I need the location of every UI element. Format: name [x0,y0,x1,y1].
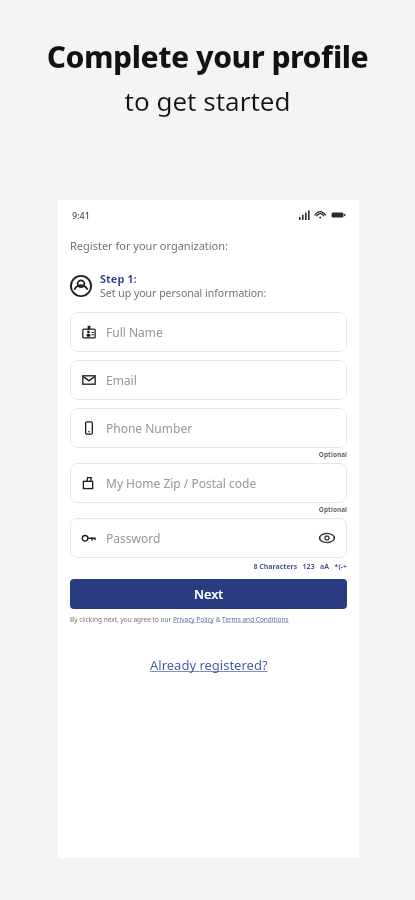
staticText: 9:41 [72,209,90,221]
staticText: Complete your profile [0,36,415,77]
staticText: Password [106,530,161,546]
button[interactable]: Phone Number [70,408,347,448]
staticText: 8 Characters 123 aA *(-+ [70,562,347,572]
staticText: My Home Zip / Postal code [106,475,257,491]
staticText: Email [106,372,137,388]
staticText: By clicking next, you agree to our Priva… [70,615,347,624]
staticText: to get started [0,83,415,118]
staticText: Optional [70,450,347,459]
staticText: Phone Number [106,420,193,436]
button[interactable]: Full Name [70,312,347,352]
button[interactable]: Already registered? [146,654,272,676]
button[interactable]: Email [70,360,347,400]
staticText: Optional [70,505,347,514]
staticText: Already registered? [150,656,268,674]
button[interactable]: My Home Zip / Postal code [70,463,347,503]
staticText: Register for your organization: [70,238,229,253]
staticText: Step 1: [100,271,137,286]
button[interactable]: Show password [319,530,335,546]
button[interactable]: Password [70,518,347,558]
button[interactable]: Next [70,579,347,609]
staticText: Set up your personal information: [100,286,267,300]
staticText: Next [194,585,224,603]
staticText: Full Name [106,324,163,340]
